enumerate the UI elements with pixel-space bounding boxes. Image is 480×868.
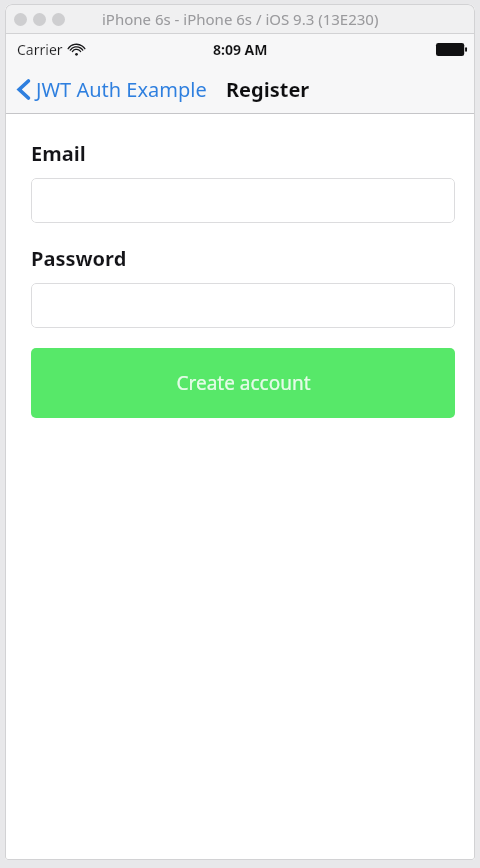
staticText: iPhone 6s - iPhone 6s / iOS 9.3 (13E230) [102,9,379,29]
other: Back [17,79,30,100]
button[interactable]: Back [13,71,212,108]
staticText: Carrier [17,40,63,59]
button[interactable]: Minimize window [33,13,46,26]
button[interactable]: Create account [31,348,455,418]
button[interactable] [31,178,455,223]
staticText: JWT Auth Example [36,76,207,103]
staticText: Create account [176,370,311,396]
button[interactable]: Zoom window [52,13,65,26]
button[interactable] [31,283,455,328]
staticText: 8:09 AM [213,40,268,59]
staticText: Password [31,245,127,272]
button[interactable]: Close window [14,13,27,26]
staticText: Register [226,76,310,103]
staticText: Email [31,140,86,167]
